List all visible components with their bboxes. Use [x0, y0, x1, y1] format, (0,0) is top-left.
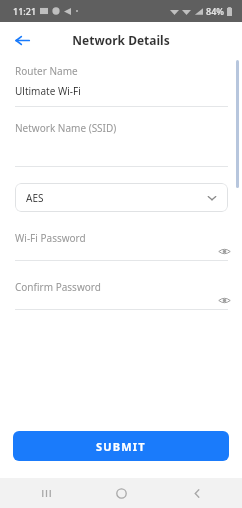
- button[interactable]: Show password: [216, 292, 232, 308]
- staticText: AES: [26, 191, 44, 205]
- staticText: Confirm Password: [15, 280, 101, 294]
- staticText: Router Name: [15, 64, 78, 78]
- button[interactable]: AES: [15, 183, 228, 212]
- button[interactable]: Back: [167, 478, 227, 508]
- staticText: Network Details: [72, 32, 170, 48]
- button[interactable]: Back: [6, 24, 38, 56]
- button[interactable]: Show password: [216, 243, 232, 259]
- staticText: Ultimate Wi-Fi: [15, 84, 81, 98]
- staticText: Wi-Fi Password: [15, 231, 86, 245]
- staticText: 84%: [206, 5, 224, 17]
- button[interactable]: SUBMIT: [13, 431, 229, 461]
- staticText: Network Name (SSID): [15, 121, 117, 135]
- staticText: SUBMIT: [96, 439, 146, 454]
- button[interactable]: Recents: [16, 478, 76, 508]
- button[interactable]: Home: [91, 478, 151, 508]
- staticText: 11:21: [13, 5, 37, 17]
